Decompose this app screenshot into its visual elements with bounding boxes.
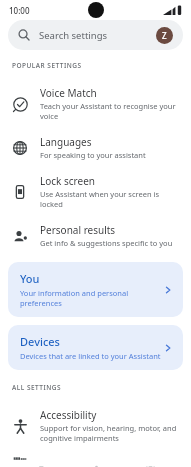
button[interactable]: Personal results — [0, 216, 191, 255]
staticText: Search settings — [39, 29, 108, 42]
staticText: Z — [162, 30, 167, 41]
staticText: Voice Match — [40, 86, 97, 100]
staticText: For speaking to your assistant — [40, 150, 146, 160]
staticText: Lock screen — [40, 174, 96, 188]
button[interactable]: Account — [156, 27, 173, 44]
button[interactable]: Accessibility — [0, 401, 191, 450]
staticText: Support for vision, hearing, motor, and … — [40, 423, 179, 443]
staticText: Devices that are linked to your Assistan… — [20, 351, 161, 361]
staticText: Devices — [20, 334, 60, 349]
button[interactable]: Voice Match — [0, 79, 191, 128]
staticText: Use Assistant when your screen is locked — [40, 189, 179, 209]
other: Search — [18, 29, 30, 41]
staticText: POPULAR SETTINGS — [12, 61, 82, 70]
staticText: 10:00 — [9, 5, 30, 16]
button[interactable]: You — [8, 262, 183, 317]
staticText: You — [20, 271, 40, 286]
staticText: Accessibility — [40, 408, 97, 422]
button[interactable]: Devices — [8, 325, 183, 370]
staticText: Personal results — [40, 223, 116, 237]
button[interactable]: Search — [8, 20, 183, 50]
staticText: Get info & suggestions specific to you — [40, 238, 173, 248]
staticText: ALL SETTINGS — [12, 383, 62, 392]
button[interactable]: Lock screen — [0, 167, 191, 216]
staticText: Teach your Assistant to recognise your v… — [40, 101, 179, 121]
button[interactable]: Languages — [0, 128, 191, 167]
staticText: Languages — [40, 135, 92, 149]
staticText: Your information and personal preference… — [20, 288, 163, 308]
button[interactable]: Accounts — [0, 450, 191, 467]
